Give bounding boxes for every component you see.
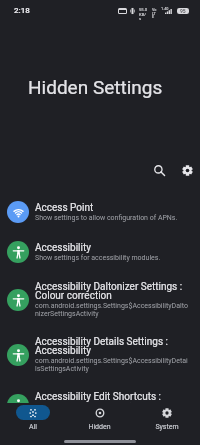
button[interactable]: Settings	[174, 157, 200, 183]
button[interactable]: Accessibility	[0, 232, 200, 272]
button[interactable]: Accessibility Details Settings : Accessi…	[0, 327, 200, 382]
staticText: 2:18	[14, 6, 30, 15]
staticText: Show settings for accessibility modules.	[35, 254, 161, 262]
staticText: All	[29, 423, 37, 431]
staticText: Accessibility Daltonizer Settings : Colo…	[35, 281, 188, 302]
staticText: Show settings to allow configuration of …	[35, 214, 178, 222]
staticText: Vo	[152, 7, 157, 11]
staticText: KB/s	[139, 12, 148, 21]
button[interactable]: Accessibility Daltonizer Settings : Colo…	[0, 272, 200, 327]
staticText: com.android.settings.Settings$Accessibil…	[35, 357, 188, 373]
staticText: Accessibility Edit Shortcuts :	[35, 391, 161, 403]
button[interactable]: Search	[146, 157, 172, 183]
staticText: Accessibility Details Settings : Accessi…	[35, 336, 188, 357]
staticText: Accessibility	[35, 242, 91, 254]
staticText: Hidden	[88, 423, 111, 431]
staticText: LTE	[152, 11, 157, 19]
button[interactable]: System	[133, 403, 200, 431]
staticText: com.android.settings.Settings$Accessibil…	[35, 302, 188, 318]
button[interactable]: Access Point	[0, 192, 200, 232]
staticText: 95	[180, 8, 186, 14]
button[interactable]: All	[0, 403, 66, 431]
staticText: com.android.settings.Settings$Accessibil…	[35, 403, 188, 419]
button[interactable]: Accessibility Edit Shortcuts :	[0, 382, 200, 428]
button[interactable]: Hidden	[66, 403, 133, 431]
staticText: 1.40	[161, 6, 169, 10]
staticText: Access Point	[35, 202, 94, 214]
staticText: Hidden Settings	[28, 76, 163, 98]
staticText: System	[155, 423, 179, 431]
staticText: 55.0	[139, 7, 148, 12]
